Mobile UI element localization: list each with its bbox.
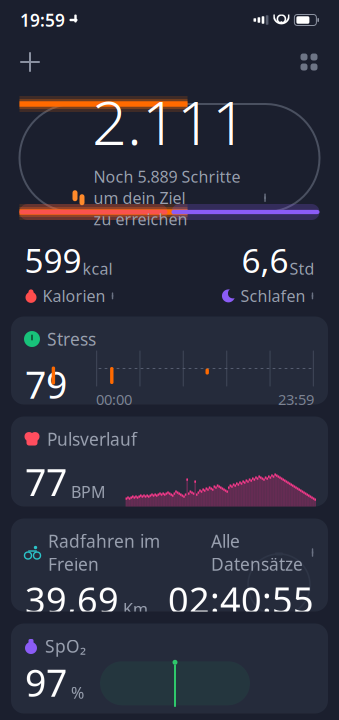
button[interactable]: Widgets (287, 40, 331, 84)
staticText: 79 (25, 359, 67, 409)
staticText: Noch 5.889 Schritte um dein Ziel zu erre… (93, 166, 240, 230)
button[interactable]: Stress (11, 316, 328, 404)
button[interactable]: 6,6 (169, 238, 334, 306)
staticText: Km (123, 598, 148, 619)
staticText: 6,6 (241, 238, 288, 282)
staticText: 23:59 (278, 389, 314, 409)
staticText: Pulsverlauf (47, 427, 137, 450)
button[interactable]: Radfahren im Freien (11, 518, 328, 611)
staticText: Schlafen (240, 285, 305, 306)
staticText: BPM (71, 481, 106, 502)
staticText: Alle Datensätze (211, 529, 303, 575)
button[interactable]: Noch 5.889 Schritte um dein Ziel zu erre… (69, 166, 269, 230)
button[interactable]: 599 (4, 238, 169, 306)
staticText: 97 (25, 657, 67, 707)
staticText: 19:59 (20, 8, 65, 31)
staticText: Kalorien (42, 285, 105, 306)
staticText: kcal (82, 258, 112, 279)
staticText: 2.111 (92, 80, 247, 162)
staticText: 02:40:55 (168, 575, 314, 623)
staticText: 599 (24, 238, 81, 282)
staticText: SpO₂ (45, 634, 86, 657)
button[interactable]: SpO₂ (11, 623, 328, 713)
staticText: Radfahren im Freien (48, 529, 160, 575)
button[interactable]: Pulsverlauf (11, 416, 328, 506)
button[interactable]: Hinzufügen (8, 40, 52, 84)
staticText: Stress (47, 327, 96, 350)
staticText: Std (289, 258, 314, 279)
staticText: 00:00 (96, 389, 132, 409)
staticText: % (71, 682, 84, 703)
staticText: 39,69 (25, 575, 119, 623)
staticText: 77 (25, 457, 67, 506)
